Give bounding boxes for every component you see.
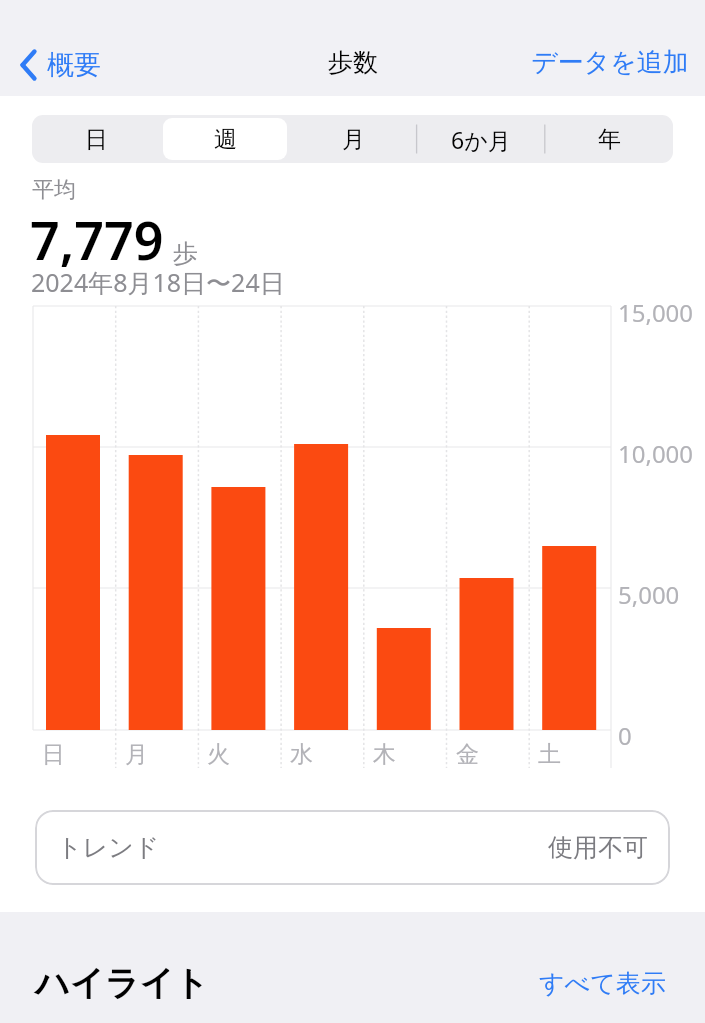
staticText: データを追加 [531,46,689,79]
button[interactable]: 週 [163,118,287,160]
staticText: 概要 [47,48,101,82]
staticText: すべて表示 [539,968,666,999]
button[interactable]: データを追加 [515,38,705,87]
staticText: 15,000 [618,296,694,329]
staticText: 月 [125,740,148,769]
button[interactable]: すべて表示 [535,964,670,1003]
staticText: 土 [538,740,561,769]
staticText: 7,779 [30,204,164,275]
staticText: 10,000 [618,437,694,470]
staticText: 年 [598,125,621,154]
staticText: ハイライト [35,962,209,1005]
staticText: トレンド [57,832,160,863]
staticText: 木 [373,740,396,769]
button[interactable]: 概要 [14,44,107,86]
staticText: 歩 [173,238,198,269]
staticText: 使用不可 [548,832,648,863]
staticText: 日 [42,740,65,769]
button[interactable]: 年 [547,118,671,160]
staticText: 6か月 [451,124,511,155]
button[interactable]: トレンド [35,810,670,885]
staticText: 水 [290,740,313,769]
button[interactable]: 日 [34,118,159,160]
button[interactable]: 月 [291,118,415,160]
staticText: 月 [342,125,365,154]
staticText: 火 [207,740,230,769]
staticText: 金 [456,740,479,769]
staticText: 歩数 [328,47,378,78]
staticText: 平均 [32,176,76,204]
staticText: 2024年8月18日〜24日 [31,265,285,299]
staticText: 0 [618,719,632,752]
staticText: 週 [214,125,237,154]
staticText: 日 [85,125,108,154]
staticText: 5,000 [618,578,680,611]
button[interactable]: 6か月 [419,118,543,160]
